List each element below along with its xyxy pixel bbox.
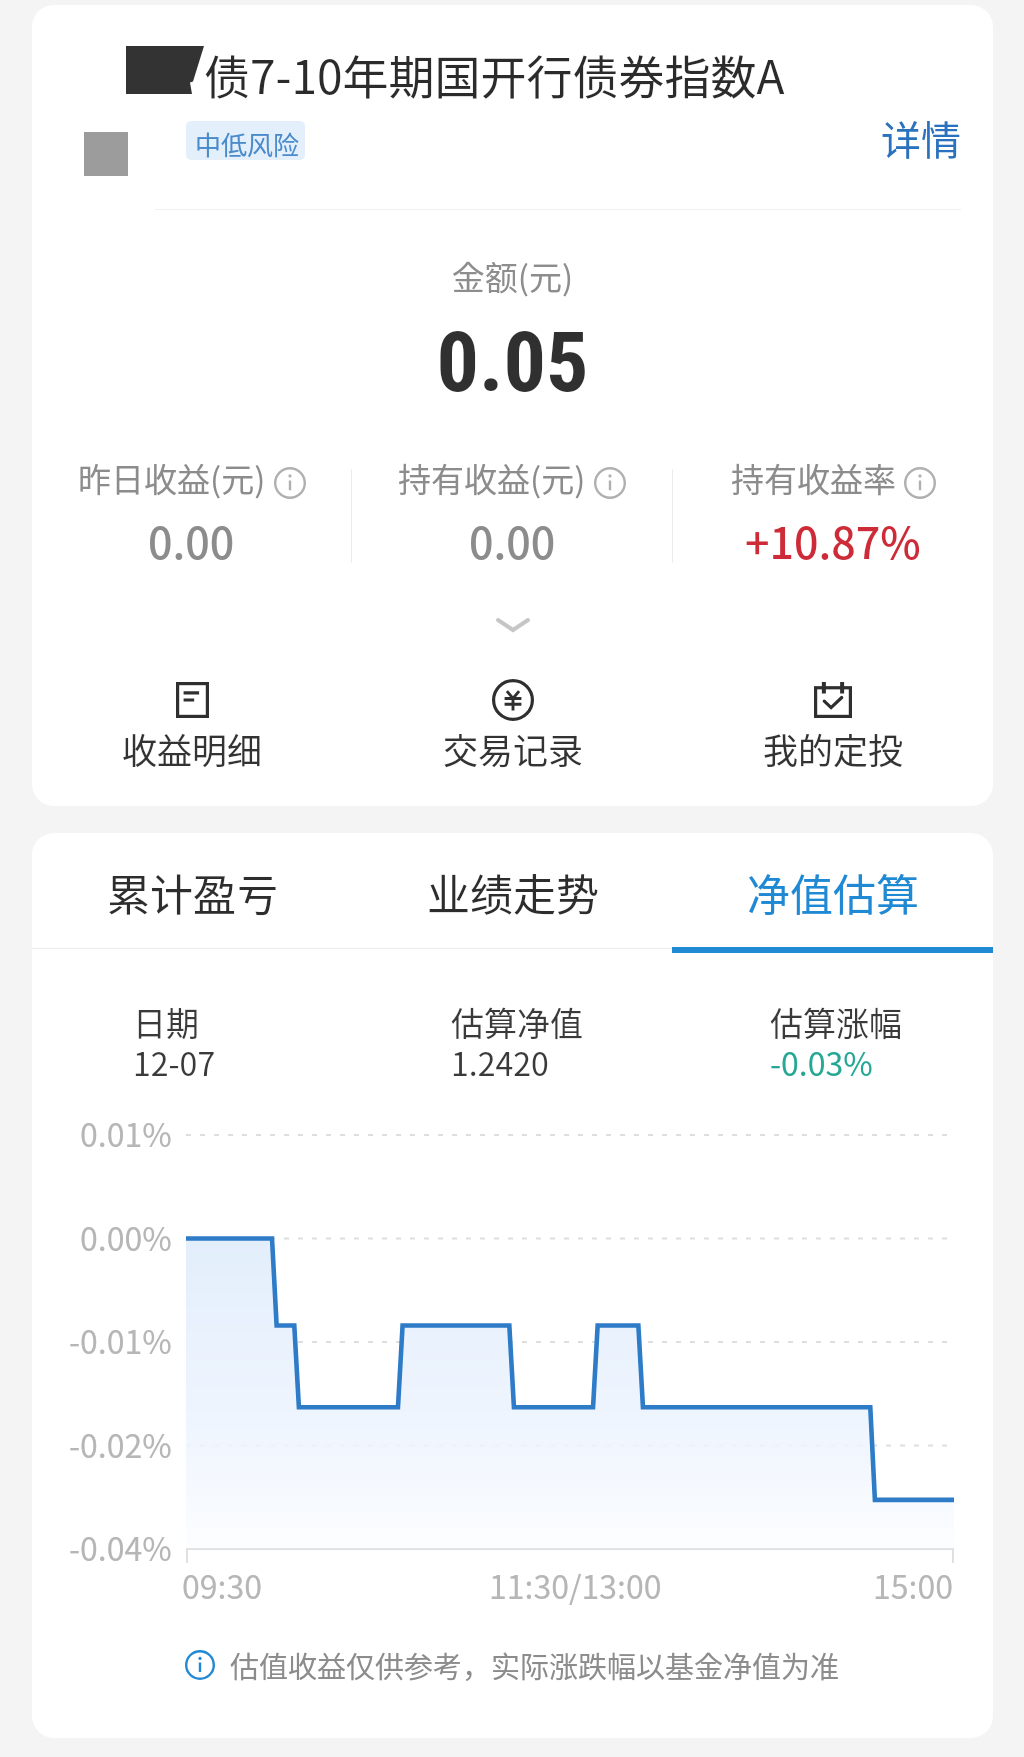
staticText: 09:30 [182,1562,262,1608]
button[interactable]: 持有收益(元) [352,454,672,566]
staticText: 我的定投 [763,723,904,774]
staticText: -0.04% [69,1524,172,1570]
staticText: 11:30/13:00 [489,1562,662,1608]
button[interactable]: 详情 [869,97,973,179]
staticText: 12-07 [133,1039,216,1085]
staticText: 0.00 [148,509,235,566]
staticText: 金额(元) [32,252,993,300]
button[interactable]: 昨日收益(元) [32,454,351,566]
button[interactable]: 我的定投 [673,681,993,774]
button[interactable]: 交易记录 [353,681,673,774]
staticText: 0.05 [32,313,993,411]
staticText: 交易记录 [443,723,584,774]
staticText: 15:00 [873,1562,953,1608]
staticText: 估值收益仅供参考，实际涨跌幅以基金净值为准 [230,1644,840,1686]
staticText: 持有收益(元) [398,454,586,502]
staticText: 估算涨幅 [770,998,902,1046]
button[interactable]: 收益明细 [32,681,353,774]
staticText: 中低风险 [195,125,300,160]
staticText: 1.2420 [451,1039,549,1085]
staticText: 债7-10年期国开行债券指数A [204,41,785,108]
staticText: +10.87% [745,509,921,566]
button[interactable]: 估算涨幅 [770,998,902,1092]
staticText: 0.00% [80,1214,172,1260]
staticText: 估算净值 [451,998,583,1046]
button[interactable]: 持有收益率 [673,454,993,566]
staticText: 0.01% [80,1110,172,1156]
staticText: 净值估算 [747,861,919,923]
staticText: 详情 [881,109,961,167]
button[interactable]: 业绩走势 [353,833,673,895]
button[interactable]: 净值估算 [673,833,993,895]
button[interactable]: 累计盈亏 [32,833,353,895]
staticText: 累计盈亏 [107,861,279,923]
staticText: 昨日收益(元) [78,454,266,502]
staticText: 0.00 [469,509,556,566]
staticText: 持有收益率 [731,454,896,502]
staticText: -0.01% [69,1317,172,1363]
button[interactable]: 估算净值 [451,998,583,1092]
button[interactable]: 日期 [133,998,216,1092]
button[interactable]: 中低风险 [186,121,305,160]
button[interactable]: Expand details [32,597,993,653]
staticText: 业绩走势 [427,861,599,923]
staticText: -0.02% [69,1421,172,1467]
staticText: 日期 [133,998,199,1046]
staticText: 收益明细 [122,723,263,774]
staticText: -0.03% [770,1039,873,1085]
